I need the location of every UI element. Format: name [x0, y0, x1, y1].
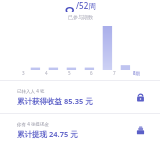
staticText: 你有 4 张提现金: [17, 121, 49, 127]
button[interactable]: 查看累计获得收益明细: [132, 89, 148, 105]
staticText: 3: [22, 70, 25, 76]
staticText: 累计获得收益 85.35 元: [17, 96, 93, 106]
staticText: 6: [90, 70, 93, 76]
button[interactable]: 已转入人 4 笔: [0, 81, 160, 113]
staticText: 8期: [133, 70, 141, 76]
staticText: 8: [64, 0, 76, 12]
staticText: 已参与期数: [68, 14, 93, 20]
staticText: 累计提现 24.75 元: [17, 129, 78, 139]
staticText: 5: [68, 70, 71, 76]
staticText: 7: [113, 70, 116, 76]
staticText: 已转入人 4 笔: [17, 88, 45, 94]
staticText: /52周: [76, 0, 97, 11]
button[interactable]: 查看累计提现明细: [132, 122, 148, 138]
staticText: 4: [45, 70, 48, 76]
button[interactable]: 你有 4 张提现金: [0, 114, 160, 146]
